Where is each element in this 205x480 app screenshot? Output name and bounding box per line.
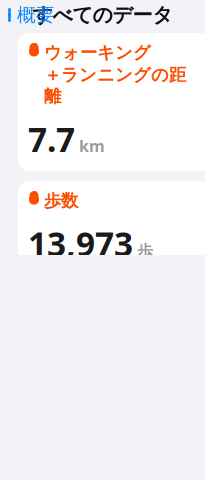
staticText: 13,973 (28, 221, 133, 266)
staticText: すべてのデータ (32, 3, 172, 27)
staticText: ウォーキング (44, 42, 151, 63)
staticText: 歩 (137, 241, 153, 261)
staticText: 7.7 (28, 117, 75, 161)
staticText: ＋ランニングの距離 (44, 64, 186, 107)
staticText: km (79, 135, 105, 156)
button[interactable]: 概要 (0, 0, 61, 30)
button[interactable]: ウォーキング (18, 33, 205, 171)
staticText: 歩数 (44, 190, 78, 211)
button[interactable]: 歩数 (18, 181, 205, 276)
staticText: 概要 (17, 3, 55, 26)
